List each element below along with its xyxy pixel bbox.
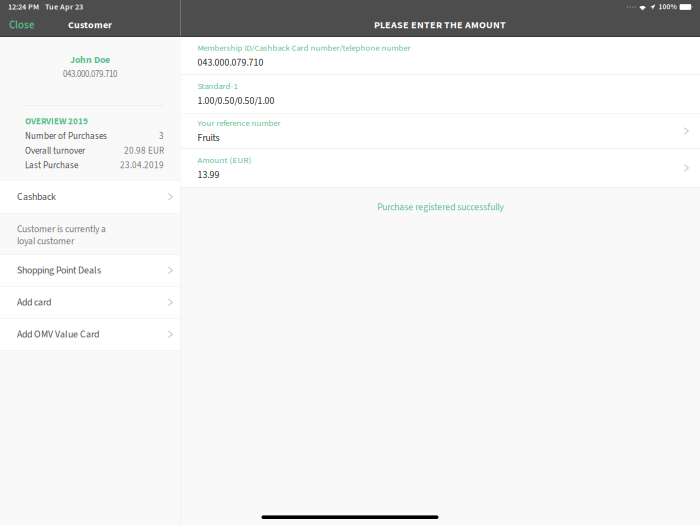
staticText: Purchase registered successfully [377,200,503,214]
staticText: Number of Purchases [25,130,107,143]
staticText: Close [9,17,35,33]
staticText: 1.00/0.50/0.50/1.00 [198,94,275,108]
staticText: 23.04.2019 [120,159,164,172]
staticText: Add card [17,295,51,309]
button[interactable]: Cashback [0,181,180,214]
staticText: Your reference number [198,117,281,129]
staticText: Last Purchase [25,159,78,172]
button[interactable]: Add card [0,287,180,319]
staticText: John Doe [70,53,110,67]
staticText: 13.99 [198,168,220,182]
staticText: OVERVIEW 2019 [25,115,88,128]
button[interactable]: Amount (EUR) [181,149,700,187]
staticText: Fruits [198,131,220,145]
staticText: 12:24 PM [8,1,39,13]
staticText: 20.98 EUR [124,144,164,157]
button[interactable]: Shopping Point Deals [0,255,180,287]
staticText: 100% [659,2,677,12]
staticText: 043.000.079.710 [63,68,117,81]
staticText: PLEASE ENTER THE AMOUNT [374,18,506,32]
staticText: Overall turnover [25,144,85,157]
button[interactable]: Your reference number [181,114,700,149]
staticText: 043.000.079.710 [198,56,264,70]
staticText: Tue Apr 23 [45,1,83,13]
staticText: Shopping Point Deals [17,263,101,277]
staticText: 3 [159,130,164,143]
button[interactable]: Close [0,12,45,38]
button[interactable]: Membership ID/Cashback Card number/telep… [181,37,700,75]
staticText: Customer [68,18,112,32]
staticText: Standard-1 [198,80,238,92]
staticText: Customer is currently a loyal customer [17,222,106,248]
staticText: Membership ID/Cashback Card number/telep… [198,42,411,54]
staticText: Amount (EUR) [198,154,252,166]
staticText: Add OMV Value Card [17,327,99,341]
staticText: Cashback [17,190,56,204]
button[interactable]: Standard-1 [181,75,700,114]
button[interactable]: Add OMV Value Card [0,319,180,351]
